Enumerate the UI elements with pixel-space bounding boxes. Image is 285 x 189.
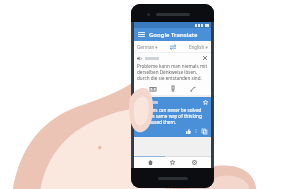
button[interactable]: Handwriting input — [188, 84, 197, 93]
button[interactable]: Rate translation — [184, 127, 192, 135]
button[interactable]: German ▾ — [137, 44, 168, 50]
button[interactable]: Listen to source — [134, 53, 211, 95]
button[interactable]: Save translation — [202, 99, 208, 105]
button[interactable]: Clear — [202, 55, 208, 61]
staticText: Google Translate — [149, 31, 198, 39]
button[interactable]: Saved — [167, 157, 178, 168]
button[interactable]: Listen to translation — [134, 97, 211, 137]
button[interactable]: Home — [145, 157, 156, 168]
button[interactable]: Menu — [137, 30, 146, 39]
button[interactable]: Camera input — [148, 84, 157, 93]
button[interactable]: Menu — [134, 28, 211, 41]
staticText: German ▾ — [137, 44, 158, 50]
button[interactable]: Listen to source — [137, 56, 142, 61]
staticText: Probleme kann man niemals mit derselben … — [137, 63, 208, 81]
button[interactable]: Swap languages — [168, 42, 177, 51]
button[interactable]: More options — [192, 127, 200, 135]
button[interactable]: Voice input — [168, 84, 177, 93]
staticText: Problems can never be solved with the sa… — [137, 107, 208, 125]
button[interactable]: Settings — [189, 157, 200, 168]
button[interactable]: Copy translation — [200, 127, 208, 135]
staticText: English ▾ — [189, 44, 208, 50]
button[interactable]: English ▾ — [177, 44, 208, 50]
